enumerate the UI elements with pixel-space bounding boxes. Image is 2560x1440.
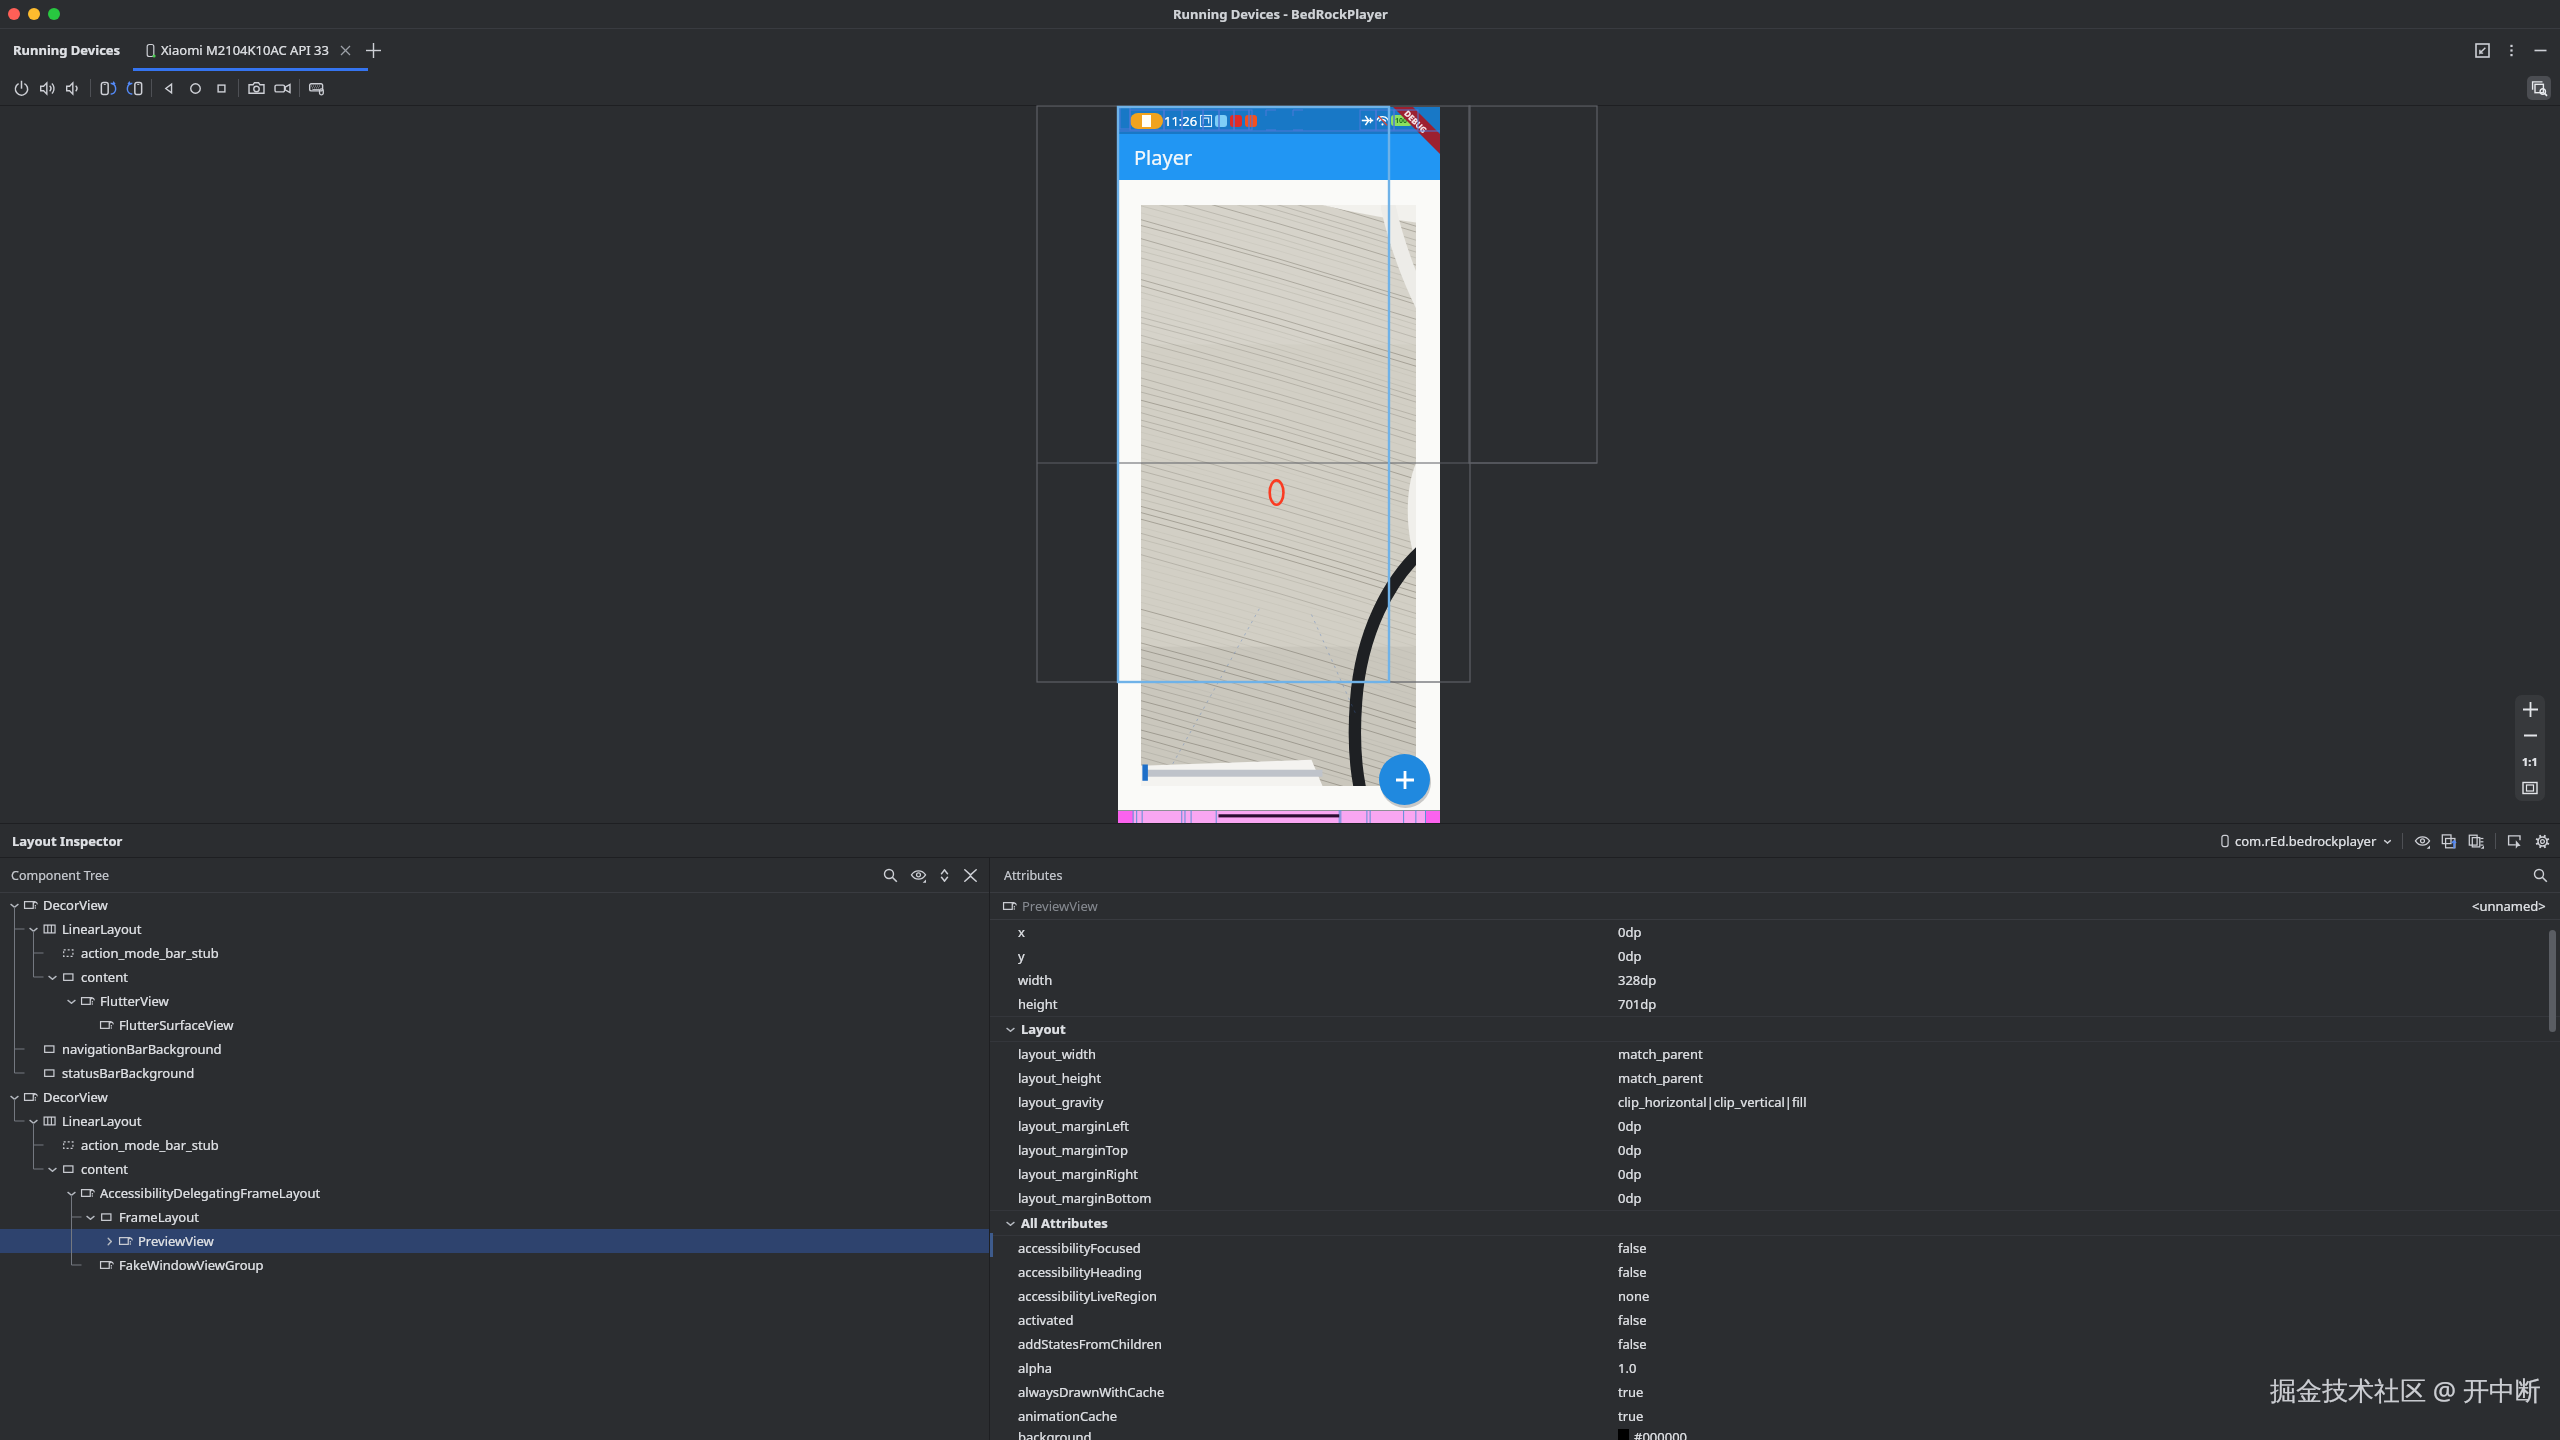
staticText: All Attributes — [1021, 1214, 1108, 1232]
staticText: layout_width — [1018, 1045, 1096, 1063]
staticText: action_mode_bar_stub — [81, 944, 219, 962]
staticText: layout_marginLeft — [1018, 1117, 1130, 1135]
staticText: false — [1618, 1335, 1647, 1353]
button[interactable]: FrameLayout — [0, 1205, 989, 1229]
button[interactable]: DecorView — [0, 893, 989, 917]
button[interactable]: height — [990, 992, 2560, 1016]
button[interactable]: layout_marginRight — [990, 1162, 2560, 1186]
staticText: layout_gravity — [1018, 1093, 1104, 1111]
button[interactable]: width — [990, 968, 2560, 992]
button[interactable]: Back — [156, 75, 182, 101]
staticText: Running Devices - BedRockPlayer — [1173, 5, 1388, 23]
button[interactable]: Home — [182, 75, 208, 101]
button[interactable]: Settings — [2532, 831, 2552, 851]
button[interactable]: FlutterSurfaceView — [0, 1013, 989, 1037]
button[interactable]: DecorView — [0, 1085, 989, 1109]
button[interactable]: layout_height — [990, 1066, 2560, 1090]
button[interactable]: Power — [8, 75, 34, 101]
button[interactable]: content — [0, 965, 989, 989]
button[interactable]: Take screenshot — [243, 75, 269, 101]
button[interactable]: layout_width — [990, 1042, 2560, 1066]
button[interactable]: More options — [2501, 40, 2521, 60]
button[interactable]: FakeWindowViewGroup — [0, 1253, 989, 1277]
button[interactable]: Layout — [990, 1017, 2560, 1041]
button[interactable]: navigationBarBackground — [0, 1037, 989, 1061]
button[interactable]: Record screen — [269, 75, 295, 101]
button[interactable]: Show layout bounds — [2412, 831, 2432, 851]
button[interactable]: PreviewView — [0, 1229, 989, 1253]
button[interactable]: Volume down — [60, 75, 86, 101]
button[interactable]: Toggle display mode — [2527, 76, 2551, 100]
button[interactable]: Split pane — [2472, 40, 2492, 60]
button[interactable]: Filter view types — [908, 865, 928, 885]
button[interactable]: addStatesFromChildren — [990, 1332, 2560, 1356]
button[interactable]: Search attributes — [2530, 865, 2550, 885]
button[interactable]: Load overlay — [2439, 831, 2459, 851]
staticText: accessibilityFocused — [1018, 1239, 1141, 1257]
button[interactable]: Volume up — [34, 75, 60, 101]
button[interactable]: Recent apps — [208, 75, 234, 101]
button[interactable]: Rotate left — [95, 75, 121, 101]
button[interactable]: statusBarBackground — [0, 1061, 989, 1085]
button[interactable]: x — [990, 920, 2560, 944]
button[interactable]: Layer options — [2466, 831, 2486, 851]
staticText: statusBarBackground — [62, 1064, 195, 1082]
button[interactable]: alpha — [990, 1356, 2560, 1380]
button[interactable]: Expand all — [934, 865, 954, 885]
button[interactable]: Minimize window — [28, 8, 40, 20]
staticText: 701dp — [1618, 995, 1657, 1013]
button[interactable]: layout_gravity — [990, 1090, 2560, 1114]
button[interactable]: AccessibilityDelegatingFrameLayout — [0, 1181, 989, 1205]
button[interactable]: All Attributes — [990, 1211, 2560, 1235]
button[interactable]: y — [990, 944, 2560, 968]
staticText: layout_marginTop — [1018, 1141, 1128, 1159]
staticText: 0dp — [1618, 923, 1642, 941]
button[interactable]: Search — [880, 865, 900, 885]
button[interactable]: Hardware input — [304, 75, 330, 101]
button[interactable]: action_mode_bar_stub — [0, 941, 989, 965]
button[interactable]: LinearLayout — [0, 917, 989, 941]
button[interactable]: Hide tool window — [2530, 40, 2550, 60]
staticText: DecorView — [43, 896, 108, 914]
button[interactable]: Zoom in — [2515, 695, 2545, 723]
button[interactable]: alwaysDrawnWithCache — [990, 1380, 2560, 1404]
button[interactable]: background — [990, 1428, 2560, 1440]
staticText: PreviewView — [1022, 897, 1098, 915]
staticText: false — [1618, 1311, 1647, 1329]
button[interactable]: layout_marginBottom — [990, 1186, 2560, 1210]
button[interactable]: Collapse all — [960, 865, 980, 885]
button[interactable]: Rotate right — [121, 75, 147, 101]
button[interactable]: FlutterView — [0, 989, 989, 1013]
button[interactable]: New tab — [364, 41, 382, 59]
staticText: 328dp — [1618, 971, 1657, 989]
staticText: Component Tree — [11, 867, 110, 884]
staticText: Xiaomi M2104K10AC API 33 — [161, 41, 329, 59]
button[interactable]: accessibilityLiveRegion — [990, 1284, 2560, 1308]
button[interactable]: Toggle deep inspect — [2505, 831, 2525, 851]
button[interactable]: Zoom to fit — [2515, 775, 2545, 801]
staticText: true — [1618, 1407, 1644, 1425]
staticText: 1.0 — [1618, 1359, 1637, 1377]
button[interactable]: LinearLayout — [0, 1109, 989, 1133]
button[interactable]: Add — [1379, 754, 1430, 805]
button[interactable]: activated — [990, 1308, 2560, 1332]
button[interactable]: Zoom to actual size — [2515, 748, 2545, 775]
button[interactable]: layout_marginTop — [990, 1138, 2560, 1162]
button[interactable]: Zoom out — [2515, 723, 2545, 748]
button[interactable]: content — [0, 1157, 989, 1181]
staticText: Running Devices — [13, 41, 121, 59]
button[interactable]: animationCache — [990, 1404, 2560, 1428]
staticText: true — [1618, 1383, 1644, 1401]
staticText: PreviewView — [138, 1232, 214, 1250]
button[interactable]: accessibilityFocused — [990, 1236, 2560, 1260]
button[interactable]: layout_marginLeft — [990, 1114, 2560, 1138]
other: Close tab — [338, 43, 352, 57]
button[interactable]: accessibilityHeading — [990, 1260, 2560, 1284]
button[interactable]: action_mode_bar_stub — [0, 1133, 989, 1157]
button[interactable]: com.rEd.bedrockplayer — [2218, 832, 2392, 850]
staticText: layout_height — [1018, 1069, 1102, 1087]
button[interactable]: Maximize window — [48, 8, 60, 20]
button[interactable]: Close window — [8, 8, 20, 20]
button[interactable]: Xiaomi M2104K10AC API 33 — [142, 29, 352, 71]
staticText: background — [1018, 1428, 1092, 1440]
